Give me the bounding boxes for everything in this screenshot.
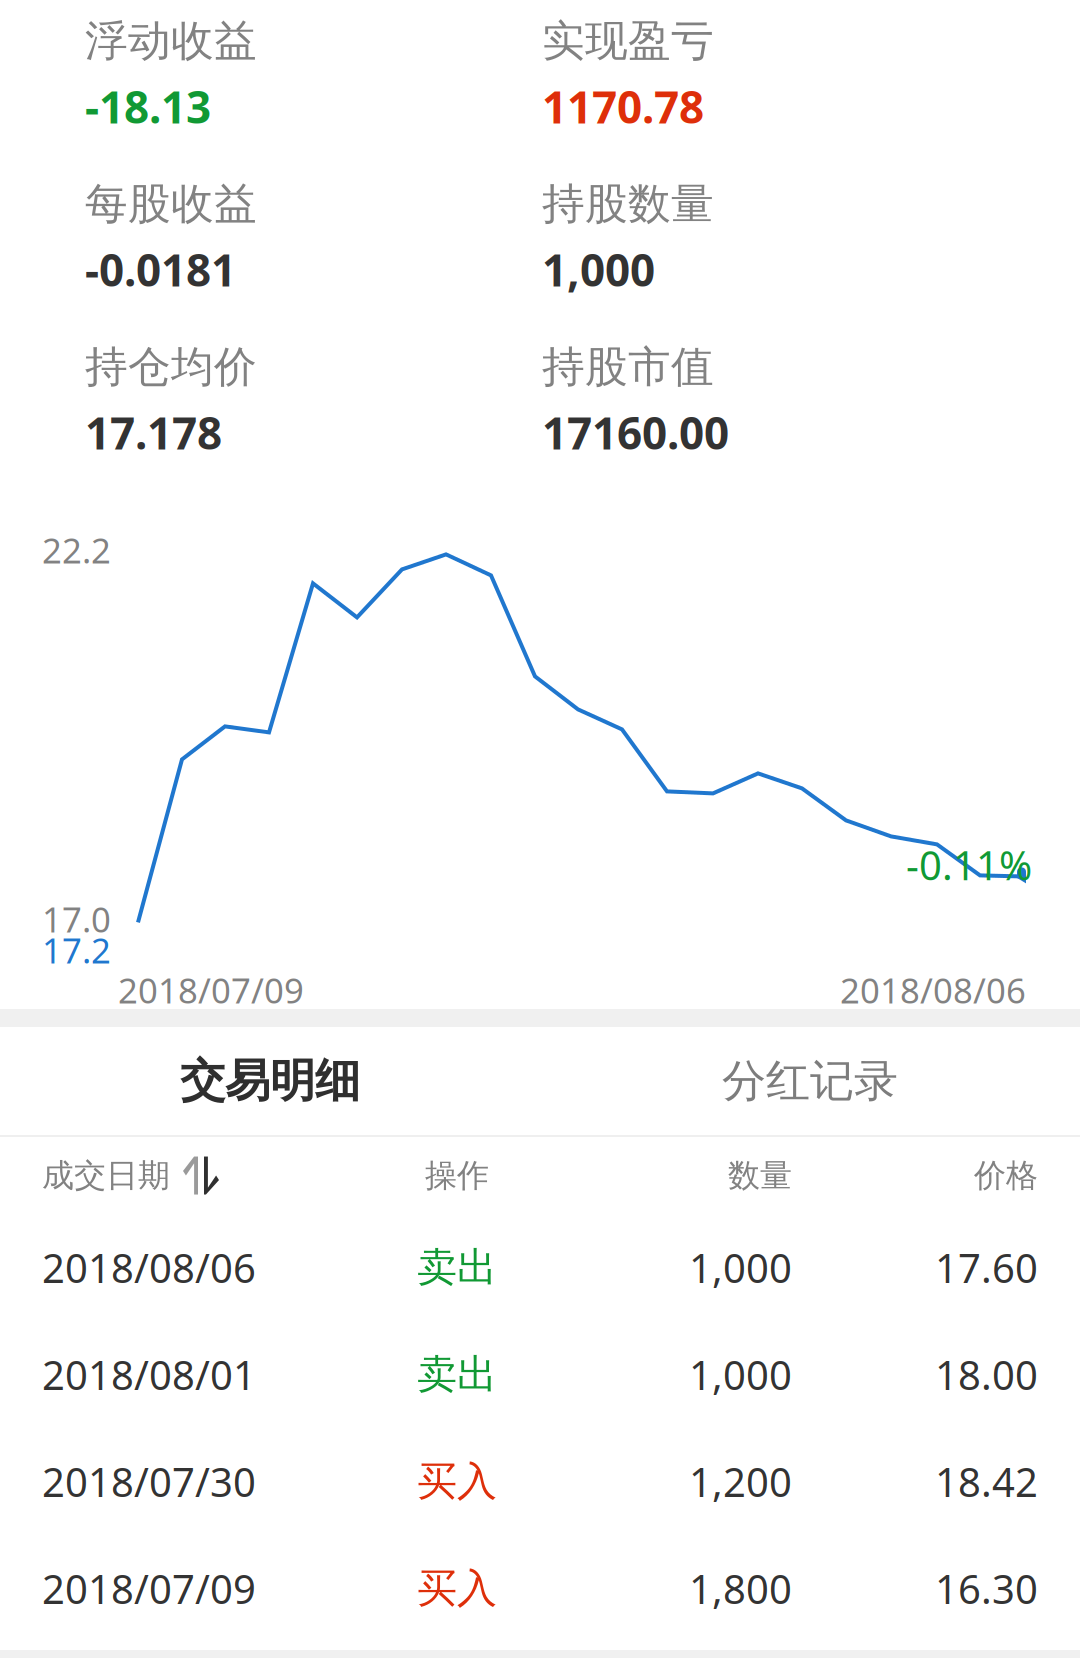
staticText: 17.0 xyxy=(42,895,111,943)
staticText: 2018/08/06 xyxy=(840,966,1026,1014)
staticText: 1,000 xyxy=(542,239,655,299)
staticText: 18.00 xyxy=(935,1347,1038,1402)
staticText: 1,200 xyxy=(689,1454,792,1509)
staticText: 数量 xyxy=(728,1155,792,1196)
button[interactable]: 2018/07/30 xyxy=(0,1428,1080,1535)
staticText: 2018/08/01 xyxy=(42,1347,256,1402)
staticText: 17.60 xyxy=(935,1240,1038,1295)
staticText: 买入 xyxy=(417,1456,497,1507)
staticText: 实现盈亏 xyxy=(542,14,714,68)
staticText: 22.2 xyxy=(42,526,111,574)
staticText: 分红记录 xyxy=(722,1053,898,1109)
staticText: -0.0181 xyxy=(85,239,236,299)
staticText: 持股市值 xyxy=(542,340,714,394)
staticText: 1,000 xyxy=(689,1240,792,1295)
staticText: 卖出 xyxy=(417,1242,497,1293)
staticText: 持仓均价 xyxy=(85,340,257,394)
button[interactable]: 2018/07/09 xyxy=(0,1535,1080,1642)
staticText: 2018/07/30 xyxy=(42,1454,256,1509)
staticText: 17160.00 xyxy=(542,402,729,462)
staticText: 交易明细 xyxy=(180,1052,360,1109)
staticText: 2018/07/09 xyxy=(42,1561,256,1616)
staticText: 16.30 xyxy=(935,1561,1038,1616)
staticText: 18.42 xyxy=(935,1454,1038,1509)
staticText: 卖出 xyxy=(417,1349,497,1400)
staticText: 价格 xyxy=(974,1155,1038,1196)
button[interactable]: 交易明细 xyxy=(0,1027,540,1135)
staticText: 持股数量 xyxy=(542,177,714,231)
staticText: 1170.78 xyxy=(542,76,704,136)
button[interactable]: 分红记录 xyxy=(540,1027,1080,1135)
button[interactable]: 2018/08/06 xyxy=(0,1214,1080,1321)
button[interactable]: 成交日期 排序 xyxy=(42,1137,357,1214)
staticText: 浮动收益 xyxy=(85,14,257,68)
staticText: 17.178 xyxy=(85,402,222,462)
staticText: 买入 xyxy=(417,1563,497,1614)
staticText: 操作 xyxy=(425,1155,489,1196)
staticText: 每股收益 xyxy=(85,177,257,231)
staticText: -0.11% xyxy=(906,837,1032,892)
staticText: 2018/08/06 xyxy=(42,1240,256,1295)
staticText: 2018/07/09 xyxy=(118,966,304,1014)
staticText: 1,000 xyxy=(689,1347,792,1402)
staticText: -18.13 xyxy=(85,76,211,136)
staticText: 成交日期 xyxy=(42,1155,170,1196)
button[interactable]: 2018/08/01 xyxy=(0,1321,1080,1428)
staticText: 1,800 xyxy=(689,1561,792,1616)
staticText: 17.2 xyxy=(42,926,111,974)
